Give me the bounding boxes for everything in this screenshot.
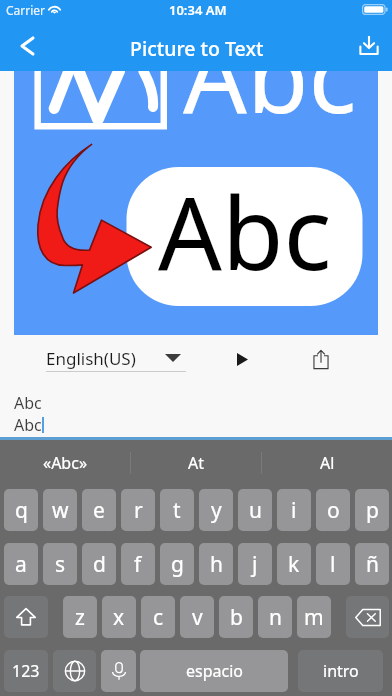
button[interactable]: intro (298, 650, 383, 692)
staticText: q (15, 496, 28, 525)
button[interactable]: v (180, 596, 214, 638)
staticText: English(US) (46, 347, 136, 370)
button[interactable]: a (4, 543, 38, 585)
button[interactable]: Back (6, 24, 48, 67)
staticText: y (211, 496, 222, 525)
button[interactable]: s (43, 543, 77, 585)
button[interactable]: n (258, 596, 292, 638)
staticText: intro (323, 660, 359, 682)
button[interactable]: u (238, 489, 272, 531)
staticText: k (288, 550, 300, 579)
button[interactable]: g (160, 543, 194, 585)
button[interactable]: «Abc» (0, 440, 130, 486)
staticText: r (134, 496, 143, 525)
staticText: o (327, 496, 340, 525)
staticText: 123 (12, 660, 40, 682)
staticText: t (173, 496, 181, 525)
button[interactable]: i (277, 489, 311, 531)
staticText: p (366, 496, 379, 525)
button[interactable]: Backspace (346, 596, 389, 638)
button[interactable]: At (131, 440, 261, 486)
button[interactable]: k (277, 543, 311, 585)
button[interactable]: Play (220, 337, 264, 381)
button[interactable]: j (238, 543, 272, 585)
button[interactable]: d (82, 543, 116, 585)
staticText: z (75, 603, 85, 632)
button[interactable]: q (4, 489, 38, 531)
button[interactable]: l (316, 543, 350, 585)
button[interactable]: ñ (355, 543, 389, 585)
button[interactable]: Download (348, 23, 390, 66)
staticText: Abc (14, 414, 42, 436)
button[interactable]: z (63, 596, 97, 638)
staticText: f (134, 550, 142, 579)
button[interactable]: h (199, 543, 233, 585)
staticText: h (210, 550, 223, 579)
button[interactable]: w (43, 489, 77, 531)
staticText: Abc (183, 71, 357, 142)
button[interactable]: r (121, 489, 155, 531)
button[interactable]: English(US) (46, 339, 187, 373)
staticText: m (304, 603, 324, 632)
staticText: s (55, 550, 66, 579)
button[interactable]: x (102, 596, 136, 638)
button[interactable]: f (121, 543, 155, 585)
button[interactable]: p (355, 489, 389, 531)
staticText: i (291, 496, 297, 525)
button[interactable]: Shift (4, 596, 48, 638)
button[interactable]: e (82, 489, 116, 531)
button[interactable]: Dictate (101, 650, 136, 692)
button[interactable]: 123 (4, 650, 48, 692)
staticText: espacio (186, 660, 243, 682)
staticText: Carrier (6, 2, 46, 18)
staticText: d (93, 550, 106, 579)
button[interactable]: t (160, 489, 194, 531)
staticText: c (153, 603, 164, 632)
staticText: x (113, 603, 125, 632)
button[interactable]: Switch keyboard (53, 650, 96, 692)
staticText: v (192, 603, 203, 632)
staticText: g (171, 550, 184, 579)
staticText: b (230, 603, 243, 632)
staticText: a (15, 550, 27, 579)
button[interactable]: o (316, 489, 350, 531)
button[interactable]: Share (299, 337, 343, 381)
staticText: 10:34 AM (169, 1, 227, 19)
staticText: At (188, 452, 205, 474)
staticText: w (52, 496, 69, 525)
button[interactable]: Al (262, 440, 392, 486)
staticText: «Abc» (43, 452, 88, 474)
button[interactable]: m (297, 596, 331, 638)
button[interactable]: c (141, 596, 175, 638)
staticText: Abc (14, 392, 42, 414)
staticText: j (252, 550, 258, 579)
staticText: Abc (158, 163, 332, 299)
button[interactable]: b (219, 596, 253, 638)
staticText: l (330, 550, 336, 579)
button[interactable]: y (199, 489, 233, 531)
button[interactable]: espacio (140, 650, 288, 692)
staticText: Al (320, 452, 335, 474)
staticText: e (93, 496, 105, 525)
staticText: Picture to Text (130, 35, 264, 62)
staticText: n (269, 603, 282, 632)
staticText: u (249, 496, 262, 525)
staticText: ñ (366, 550, 379, 579)
